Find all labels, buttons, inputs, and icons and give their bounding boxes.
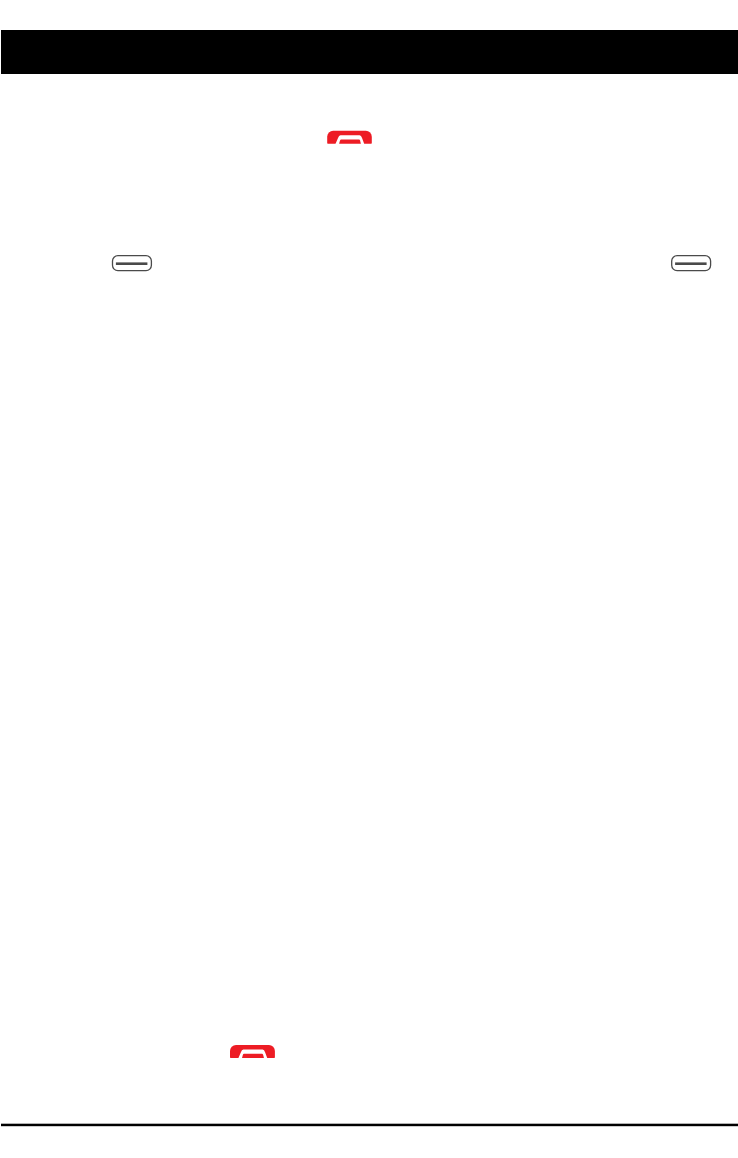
button[interactable]: End call xyxy=(327,131,372,144)
button[interactable]: Remove xyxy=(112,255,152,272)
button[interactable]: End call xyxy=(230,1045,275,1058)
button[interactable]: Remove xyxy=(671,255,711,272)
